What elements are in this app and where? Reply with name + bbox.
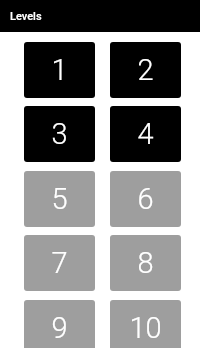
button[interactable]: 9 [24, 300, 95, 348]
button[interactable]: 5 [24, 171, 95, 227]
button[interactable]: 4 [110, 106, 181, 162]
button[interactable]: 2 [110, 42, 181, 98]
button[interactable]: 8 [110, 235, 181, 291]
staticText: 2 [137, 53, 154, 87]
staticText: 9 [51, 311, 68, 345]
button[interactable]: 10 [110, 300, 181, 348]
button[interactable]: 3 [24, 106, 95, 162]
staticText: 8 [137, 246, 154, 280]
staticText: 1 [51, 53, 68, 87]
button[interactable]: 1 [24, 42, 95, 98]
staticText: 3 [51, 117, 68, 151]
button[interactable]: 6 [110, 171, 181, 227]
staticText: 4 [137, 117, 154, 151]
button[interactable]: 7 [24, 235, 95, 291]
staticText: 5 [51, 182, 68, 216]
staticText: 6 [137, 182, 154, 216]
staticText: 10 [129, 311, 162, 345]
staticText: 7 [51, 246, 68, 280]
staticText: Levels [10, 10, 42, 23]
